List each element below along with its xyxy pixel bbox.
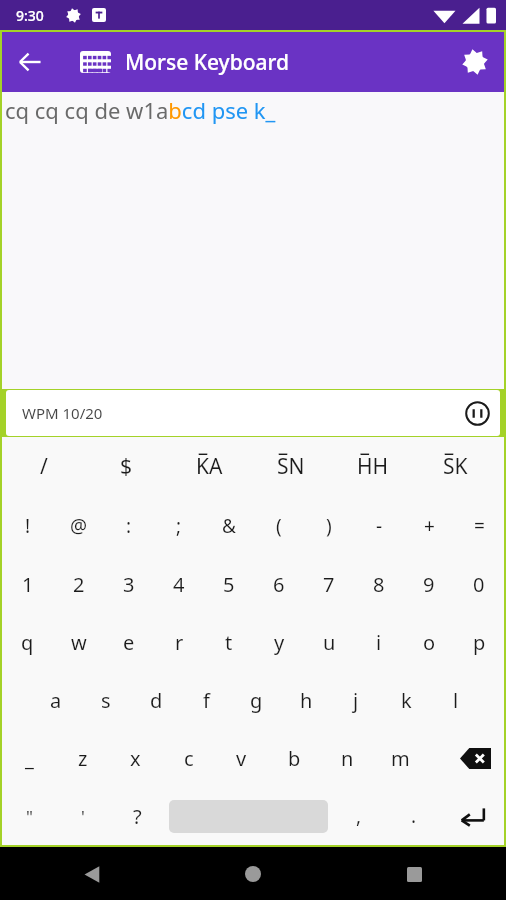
button[interactable]: q — [2, 613, 53, 671]
button[interactable]: x — [109, 729, 162, 787]
button[interactable]: p — [454, 613, 504, 671]
button[interactable]: c — [162, 729, 215, 787]
button[interactable]: 3 — [104, 555, 154, 613]
button[interactable]: t — [204, 613, 254, 671]
staticText: @ — [70, 513, 88, 539]
staticText: 8 — [373, 571, 385, 598]
button[interactable]: r — [154, 613, 204, 671]
staticText: u — [323, 629, 336, 656]
button[interactable]: 9 — [404, 555, 454, 613]
button[interactable]: H̅H — [332, 437, 414, 496]
button[interactable]: o — [404, 613, 454, 671]
button[interactable]: k — [381, 671, 431, 729]
staticText: l — [453, 687, 459, 714]
staticText: 0 — [473, 571, 485, 598]
staticText: K̅A — [196, 452, 223, 481]
button[interactable]: 1 — [2, 555, 53, 613]
button[interactable]: = — [454, 496, 504, 555]
button[interactable]: ( — [254, 496, 304, 555]
staticText: WPM 10/20 — [22, 403, 103, 423]
button[interactable]: Back — [70, 852, 114, 896]
button[interactable]: + — [404, 496, 454, 555]
button[interactable]: a — [31, 671, 81, 729]
staticText: S̅N — [277, 452, 305, 481]
button[interactable]: Recents — [392, 852, 436, 896]
staticText: y — [274, 629, 285, 656]
button[interactable]: y — [254, 613, 304, 671]
staticText: t — [225, 629, 233, 656]
button[interactable]: 0 — [454, 555, 504, 613]
button[interactable]: 5 — [204, 555, 254, 613]
button[interactable]: Enter — [441, 787, 504, 845]
button[interactable]: f — [181, 671, 231, 729]
button[interactable]: S̅N — [250, 437, 332, 496]
button[interactable]: g — [231, 671, 281, 729]
button[interactable]: ) — [304, 496, 354, 555]
button[interactable]: / — [2, 437, 85, 496]
staticText: z — [78, 745, 88, 772]
button[interactable]: j — [331, 671, 381, 729]
staticText: w — [71, 629, 87, 656]
button[interactable]: i — [354, 613, 404, 671]
button[interactable]: m — [374, 729, 427, 787]
button[interactable]: ' — [56, 787, 110, 845]
button[interactable]: Pause — [454, 390, 500, 436]
staticText: o — [423, 629, 436, 656]
button[interactable]: n — [321, 729, 374, 787]
button[interactable]: b — [268, 729, 321, 787]
button[interactable]: : — [104, 496, 154, 555]
button[interactable]: e — [104, 613, 154, 671]
staticText: 6 — [273, 571, 285, 598]
button[interactable]: S̅K — [414, 437, 496, 496]
staticText: ) — [326, 513, 332, 539]
button[interactable]: l — [431, 671, 481, 729]
button[interactable]: " — [2, 787, 56, 845]
staticText: ; — [176, 513, 182, 539]
staticText: i — [376, 629, 382, 656]
staticText: a — [50, 687, 62, 714]
staticText: b — [288, 745, 301, 772]
staticText: = — [474, 513, 485, 539]
button[interactable]: d — [131, 671, 181, 729]
button[interactable]: 7 — [304, 555, 354, 613]
button[interactable]: z — [56, 729, 109, 787]
button[interactable]: w — [53, 613, 104, 671]
button[interactable]: Back — [2, 34, 58, 90]
staticText: v — [236, 745, 247, 772]
button[interactable]: - — [354, 496, 404, 555]
button[interactable]: 8 — [354, 555, 404, 613]
button[interactable]: Settings — [446, 33, 504, 91]
staticText: 2 — [73, 571, 85, 598]
button[interactable]: s — [81, 671, 131, 729]
button[interactable]: 4 — [154, 555, 204, 613]
staticText: & — [222, 513, 236, 539]
button[interactable]: . — [386, 787, 441, 845]
button[interactable]: v — [215, 729, 268, 787]
button[interactable]: ; — [154, 496, 204, 555]
button[interactable]: ! — [2, 496, 53, 555]
button[interactable]: , — [331, 787, 386, 845]
button[interactable]: 2 — [53, 555, 104, 613]
button[interactable]: _ — [2, 729, 56, 787]
staticText: e — [123, 629, 135, 656]
staticText: 7 — [323, 571, 335, 598]
button[interactable]: $ — [85, 437, 168, 496]
staticText: k — [401, 687, 412, 714]
button[interactable]: ? — [110, 787, 165, 845]
button[interactable]: 6 — [254, 555, 304, 613]
button[interactable]: K̅A — [168, 437, 250, 496]
button[interactable]: & — [204, 496, 254, 555]
staticText: p — [473, 629, 486, 656]
staticText: , — [356, 803, 362, 829]
button[interactable]: Backspace — [446, 729, 504, 787]
staticText: h — [300, 687, 313, 714]
button[interactable]: h — [281, 671, 331, 729]
button[interactable]: Home — [231, 852, 275, 896]
button[interactable]: @ — [53, 496, 104, 555]
button[interactable]: WPM 10/20 — [6, 390, 500, 436]
staticText: + — [424, 513, 435, 539]
staticText: d — [150, 687, 163, 714]
button[interactable]: u — [304, 613, 354, 671]
button[interactable]: cq cq cq de w1abcd pse k_ — [2, 92, 504, 389]
